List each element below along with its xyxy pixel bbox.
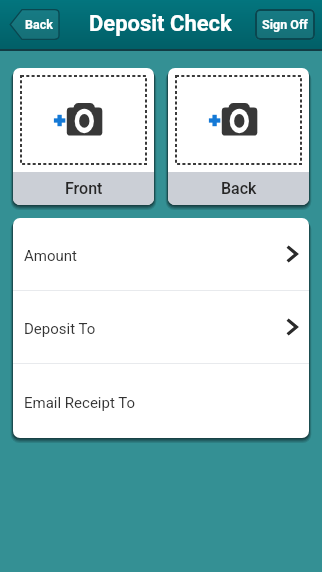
button[interactable]: Email Receipt To <box>13 364 309 438</box>
button[interactable]: Sign Off <box>255 9 315 40</box>
staticText: Back <box>221 179 257 198</box>
staticText: Front <box>65 179 103 198</box>
button[interactable]: Deposit To <box>13 291 309 363</box>
button[interactable]: Capture Front of check <box>13 68 154 205</box>
staticText: Email Receipt To <box>24 394 136 412</box>
button[interactable]: Capture Back of check <box>168 68 309 205</box>
staticText: Deposit To <box>24 320 96 338</box>
staticText: Back <box>25 17 53 32</box>
staticText: Deposit Check <box>89 11 232 37</box>
staticText: Amount <box>24 247 77 265</box>
staticText: Sign Off <box>262 17 308 32</box>
button[interactable]: Back <box>9 9 59 40</box>
button[interactable]: Amount <box>13 218 309 290</box>
